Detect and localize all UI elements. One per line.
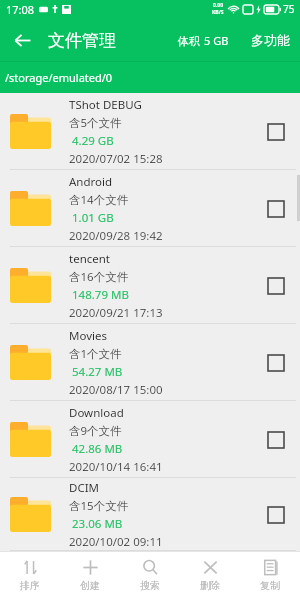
- staticText: 1.01 GB: [72, 210, 114, 226]
- button[interactable]: Select Movies: [256, 343, 296, 383]
- staticText: KB/S: [212, 9, 224, 16]
- button[interactable]: tencent: [0, 247, 300, 324]
- staticText: 2020/07/02 15:28: [69, 151, 163, 167]
- staticText: 2020/09/21 17:13: [69, 305, 163, 321]
- staticText: 含15个文件: [69, 498, 129, 514]
- button[interactable]: Select Android: [256, 189, 296, 229]
- staticText: 148.79 MB: [72, 287, 129, 303]
- staticText: Android: [69, 174, 113, 190]
- staticText: 创建: [80, 579, 100, 592]
- staticText: 多功能: [251, 32, 290, 48]
- staticText: DCIM: [69, 480, 99, 496]
- staticText: 含14个文件: [69, 192, 129, 208]
- button[interactable]: Select tencent: [256, 266, 296, 306]
- button[interactable]: Download: [0, 401, 300, 478]
- staticText: 含9个文件: [69, 423, 122, 439]
- staticText: TShot DEBUG: [69, 97, 142, 113]
- button[interactable]: TShot DEBUG: [0, 93, 300, 170]
- staticText: 23.06 MB: [72, 516, 123, 532]
- button[interactable]: Select DCIM: [256, 495, 296, 535]
- staticText: 复制: [260, 579, 280, 592]
- staticText: 2020/08/17 15:00: [69, 382, 163, 398]
- staticText: 42.86 MB: [72, 441, 123, 457]
- staticText: 0.00: [213, 2, 223, 9]
- staticText: 2020/10/02 09:11: [69, 534, 163, 550]
- staticText: 4.29 GB: [72, 133, 114, 149]
- button[interactable]: 复制: [240, 551, 300, 600]
- button[interactable]: 体积: [174, 33, 233, 48]
- staticText: 删除: [200, 579, 220, 592]
- staticText: /storage/emulated/0: [5, 70, 113, 85]
- staticText: 75: [283, 2, 295, 16]
- button[interactable]: Select TShot DEBUG: [256, 112, 296, 152]
- staticText: tencent: [69, 251, 111, 267]
- staticText: 5 GB: [204, 33, 229, 48]
- button[interactable]: 排序: [0, 551, 60, 600]
- staticText: 54.27 MB: [72, 364, 123, 380]
- staticText: Movies: [69, 328, 107, 344]
- button[interactable]: 多功能: [251, 32, 300, 48]
- staticText: 含16个文件: [69, 269, 129, 285]
- staticText: 含1个文件: [69, 346, 122, 362]
- button[interactable]: 搜索: [120, 551, 180, 600]
- staticText: 体积: [178, 34, 200, 48]
- button[interactable]: 删除: [180, 551, 240, 600]
- staticText: 排序: [20, 579, 40, 592]
- button[interactable]: Android: [0, 170, 300, 247]
- button[interactable]: DCIM: [0, 478, 300, 551]
- staticText: 2020/10/14 16:41: [69, 459, 163, 475]
- staticText: 搜索: [140, 579, 160, 592]
- button[interactable]: Movies: [0, 324, 300, 401]
- button[interactable]: Back: [0, 18, 44, 62]
- button[interactable]: 创建: [60, 551, 120, 600]
- staticText: 含5个文件: [69, 115, 122, 131]
- staticText: 文件管理: [48, 30, 116, 51]
- staticText: 2020/09/28 19:42: [69, 228, 163, 244]
- staticText: 17:08: [6, 2, 35, 17]
- staticText: Download: [69, 405, 124, 421]
- button[interactable]: Select Download: [256, 420, 296, 460]
